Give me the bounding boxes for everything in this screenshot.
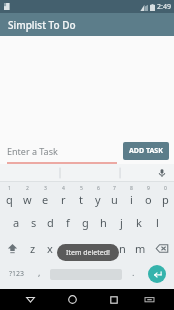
button[interactable]: Hide keyboard bbox=[135, 289, 164, 310]
button[interactable]: 9 bbox=[140, 182, 157, 209]
staticText: f bbox=[66, 215, 70, 230]
button[interactable]: 0 bbox=[157, 182, 174, 209]
staticText: 4 bbox=[62, 185, 65, 192]
button[interactable]: 6 bbox=[89, 182, 106, 209]
staticText: z bbox=[30, 241, 36, 256]
staticText: o bbox=[145, 192, 152, 207]
staticText: s bbox=[31, 215, 37, 230]
staticText: 5 bbox=[80, 185, 83, 192]
staticText: Enter a Task bbox=[7, 145, 58, 157]
staticText: 3 bbox=[44, 185, 47, 192]
button[interactable]: 3 bbox=[36, 182, 54, 209]
button[interactable]: b bbox=[95, 235, 113, 261]
staticText: e bbox=[42, 192, 49, 207]
button[interactable]: Recent apps bbox=[93, 289, 135, 310]
staticText: g bbox=[82, 215, 89, 230]
button[interactable]: Backspace bbox=[149, 235, 174, 261]
staticText: h bbox=[100, 215, 107, 230]
staticText: x bbox=[47, 241, 53, 256]
staticText: 0 bbox=[164, 185, 167, 192]
button[interactable]: 8 bbox=[123, 182, 140, 209]
button[interactable]: Voice input bbox=[157, 168, 167, 178]
staticText: r bbox=[61, 192, 66, 207]
button[interactable]: g bbox=[76, 209, 94, 235]
button[interactable]: x bbox=[41, 235, 59, 261]
button[interactable]: Shift bbox=[0, 235, 24, 261]
staticText: i bbox=[130, 192, 133, 207]
button[interactable]: , bbox=[30, 261, 48, 287]
staticText: , bbox=[38, 266, 41, 278]
staticText: t bbox=[79, 192, 83, 207]
button[interactable]: v bbox=[77, 235, 95, 261]
staticText: b bbox=[101, 241, 108, 256]
staticText: w bbox=[23, 192, 32, 207]
button[interactable]: d bbox=[42, 209, 59, 235]
button[interactable]: Enter a Task bbox=[7, 138, 117, 164]
staticText: d bbox=[47, 215, 54, 230]
staticText: c bbox=[65, 241, 71, 256]
staticText: Item deleted! bbox=[66, 248, 110, 258]
button[interactable]: Home bbox=[51, 289, 93, 310]
button[interactable]: 5 bbox=[72, 182, 89, 209]
button[interactable]: c bbox=[59, 235, 77, 261]
button[interactable]: a bbox=[8, 209, 25, 235]
button[interactable]: z bbox=[24, 235, 41, 261]
staticText: ?123 bbox=[9, 269, 25, 279]
button[interactable]: ADD TASK bbox=[123, 142, 169, 160]
staticText: 7 bbox=[113, 185, 116, 192]
button[interactable]: h bbox=[94, 209, 112, 235]
staticText: 1 bbox=[8, 185, 11, 192]
staticText: p bbox=[162, 192, 169, 207]
staticText: q bbox=[6, 192, 13, 207]
button[interactable]: m bbox=[131, 235, 149, 261]
button[interactable]: n bbox=[113, 235, 131, 261]
button[interactable]: s bbox=[25, 209, 42, 235]
staticText: ADD TASK bbox=[129, 146, 163, 156]
button[interactable]: k bbox=[130, 209, 148, 235]
staticText: 8 bbox=[130, 185, 133, 192]
button[interactable]: . bbox=[124, 261, 142, 287]
button[interactable]: f bbox=[59, 209, 76, 235]
staticText: l bbox=[156, 215, 159, 230]
button[interactable]: 7 bbox=[106, 182, 123, 209]
staticText: . bbox=[132, 266, 135, 278]
button[interactable]: l bbox=[148, 209, 166, 235]
staticText: a bbox=[13, 215, 20, 230]
button[interactable]: Enter bbox=[148, 265, 166, 283]
staticText: 2:49 bbox=[157, 2, 171, 12]
button[interactable]: 1 bbox=[0, 182, 18, 209]
staticText: 9 bbox=[147, 185, 150, 192]
staticText: 2 bbox=[26, 185, 29, 192]
staticText: y bbox=[95, 192, 101, 207]
staticText: j bbox=[120, 215, 123, 230]
staticText: Simplist To Do bbox=[8, 18, 76, 32]
button[interactable]: Back bbox=[10, 289, 51, 310]
staticText: 6 bbox=[97, 185, 100, 192]
button[interactable]: Simplist To Do bbox=[0, 13, 174, 36]
staticText: u bbox=[111, 192, 118, 207]
staticText: m bbox=[135, 241, 146, 256]
button[interactable]: 4 bbox=[54, 182, 72, 209]
staticText: k bbox=[136, 215, 142, 230]
staticText: v bbox=[83, 241, 89, 256]
button[interactable]: 2 bbox=[18, 182, 36, 209]
staticText: n bbox=[119, 241, 126, 256]
button[interactable]: j bbox=[112, 209, 130, 235]
button[interactable]: ?123 bbox=[3, 261, 30, 287]
